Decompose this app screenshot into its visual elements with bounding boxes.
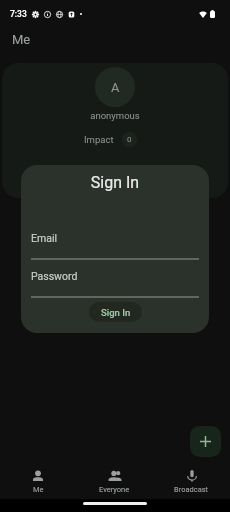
button[interactable]: Add bbox=[190, 426, 221, 457]
staticText: anonymous bbox=[2, 110, 228, 121]
staticText: Sign In bbox=[101, 307, 131, 318]
button[interactable]: A bbox=[2, 63, 228, 198]
staticText: Password bbox=[31, 270, 78, 282]
staticText: 7:33 bbox=[10, 9, 27, 19]
staticText: Me bbox=[33, 485, 44, 494]
button[interactable]: Sign In bbox=[89, 302, 142, 322]
staticText: A bbox=[111, 80, 120, 95]
staticText: Email bbox=[31, 232, 57, 244]
staticText: Everyone bbox=[99, 485, 130, 494]
staticText: Broadcast bbox=[174, 485, 209, 494]
staticText: 0 bbox=[127, 135, 132, 144]
button[interactable]: Me bbox=[0, 463, 76, 499]
button[interactable]: Broadcast bbox=[153, 463, 230, 499]
button[interactable]: Me bbox=[12, 25, 230, 53]
button[interactable]: Everyone bbox=[76, 463, 153, 499]
staticText: Sign In bbox=[21, 173, 209, 192]
staticText: Impact bbox=[84, 134, 114, 145]
staticText: Me bbox=[12, 32, 31, 47]
